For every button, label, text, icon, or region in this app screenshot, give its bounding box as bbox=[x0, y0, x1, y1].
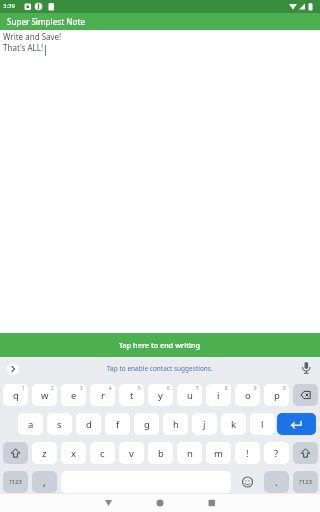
button[interactable] bbox=[106, 494, 213, 512]
button[interactable]: n bbox=[177, 442, 202, 464]
staticText: q bbox=[13, 389, 19, 402]
staticText: 2 bbox=[51, 385, 54, 391]
button[interactable]: e bbox=[61, 384, 86, 406]
button[interactable]: t bbox=[119, 384, 144, 406]
staticText: 7 bbox=[196, 385, 199, 391]
button[interactable]: j bbox=[192, 413, 217, 435]
staticText: Tap to enable contact suggestions. bbox=[107, 364, 213, 373]
button[interactable]: d bbox=[76, 413, 101, 435]
staticText: u bbox=[187, 389, 193, 402]
staticText: o bbox=[245, 389, 251, 402]
staticText: s bbox=[57, 418, 62, 431]
staticText: l bbox=[261, 418, 264, 431]
staticText: h bbox=[173, 418, 179, 431]
staticText: ?123 bbox=[299, 478, 312, 486]
staticText: m bbox=[214, 447, 223, 460]
button[interactable]: ? bbox=[264, 442, 289, 464]
button[interactable]: p bbox=[264, 384, 289, 406]
button[interactable]: i bbox=[206, 384, 231, 406]
button[interactable]: q bbox=[3, 384, 28, 406]
button[interactable]: Tap to enable contact suggestions. bbox=[0, 357, 320, 380]
staticText: t bbox=[130, 389, 134, 402]
button[interactable]: r bbox=[90, 384, 115, 406]
button[interactable]: s bbox=[47, 413, 72, 435]
button[interactable]: x bbox=[61, 442, 86, 464]
staticText: ?123 bbox=[9, 478, 22, 486]
button[interactable]: , bbox=[32, 471, 57, 493]
button[interactable] bbox=[213, 494, 320, 512]
staticText: 6 bbox=[167, 385, 170, 391]
staticText: j bbox=[203, 418, 206, 431]
staticText: p bbox=[274, 389, 280, 402]
staticText: 0 bbox=[283, 385, 286, 391]
staticText: 3:39 bbox=[3, 2, 15, 10]
button[interactable] bbox=[7, 363, 19, 375]
button[interactable]: z bbox=[32, 442, 57, 464]
staticText: d bbox=[86, 418, 92, 431]
staticText: w bbox=[41, 389, 49, 402]
button[interactable]: ! bbox=[235, 442, 260, 464]
staticText: y bbox=[158, 389, 163, 402]
button[interactable]: v bbox=[119, 442, 144, 464]
staticText: c bbox=[100, 447, 105, 460]
button[interactable]: b bbox=[148, 442, 173, 464]
staticText: 4 bbox=[109, 385, 112, 391]
button[interactable] bbox=[297, 359, 316, 378]
staticText: Tap here to end writing bbox=[119, 340, 201, 350]
button[interactable]: Tap here to end writing bbox=[0, 333, 320, 357]
staticText: f bbox=[116, 418, 120, 431]
button[interactable] bbox=[3, 442, 28, 464]
button[interactable]: l bbox=[250, 413, 275, 435]
button[interactable]: o bbox=[235, 384, 260, 406]
staticText: v bbox=[129, 447, 134, 460]
staticText: . bbox=[275, 475, 278, 489]
staticText: r bbox=[101, 389, 105, 402]
button[interactable]: a bbox=[18, 413, 43, 435]
button[interactable]: m bbox=[206, 442, 231, 464]
button[interactable]: ?123 bbox=[293, 471, 318, 493]
staticText: x bbox=[71, 447, 77, 460]
button[interactable]: h bbox=[163, 413, 188, 435]
button[interactable]: f bbox=[105, 413, 130, 435]
staticText: 9 bbox=[254, 385, 257, 391]
button[interactable] bbox=[277, 413, 316, 435]
staticText: b bbox=[158, 447, 164, 460]
staticText: a bbox=[28, 418, 34, 431]
button[interactable]: u bbox=[177, 384, 202, 406]
staticText: 3 bbox=[80, 385, 83, 391]
button[interactable] bbox=[293, 442, 318, 464]
button[interactable]: ?123 bbox=[3, 471, 28, 493]
staticText: z bbox=[42, 447, 47, 460]
staticText: k bbox=[231, 418, 237, 431]
button[interactable]: w bbox=[32, 384, 57, 406]
staticText: g bbox=[144, 418, 150, 431]
staticText: 8 bbox=[225, 385, 228, 391]
button[interactable]: . bbox=[264, 471, 289, 493]
staticText: ! bbox=[246, 447, 249, 460]
staticText: Write and Save! That's ALL! bbox=[3, 31, 62, 54]
button[interactable]: g bbox=[134, 413, 159, 435]
staticText: 1 bbox=[22, 385, 25, 391]
staticText: Super Simplest Note bbox=[7, 16, 86, 27]
staticText: 5 bbox=[138, 385, 141, 391]
staticText: i bbox=[217, 389, 220, 402]
staticText: ? bbox=[274, 447, 279, 460]
button[interactable]: k bbox=[221, 413, 246, 435]
staticText: n bbox=[187, 447, 193, 460]
button[interactable]: y bbox=[148, 384, 173, 406]
staticText: , bbox=[43, 475, 46, 489]
button[interactable] bbox=[293, 384, 318, 406]
button[interactable]: c bbox=[90, 442, 115, 464]
staticText: e bbox=[71, 389, 77, 402]
button[interactable] bbox=[235, 471, 260, 493]
